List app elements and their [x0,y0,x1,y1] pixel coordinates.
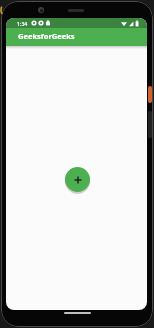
button[interactable] [65,167,90,192]
staticText: 1:34 [17,20,28,27]
button[interactable]: GeeksforGeeks [6,28,147,46]
staticText: GeeksforGeeks [18,31,75,41]
